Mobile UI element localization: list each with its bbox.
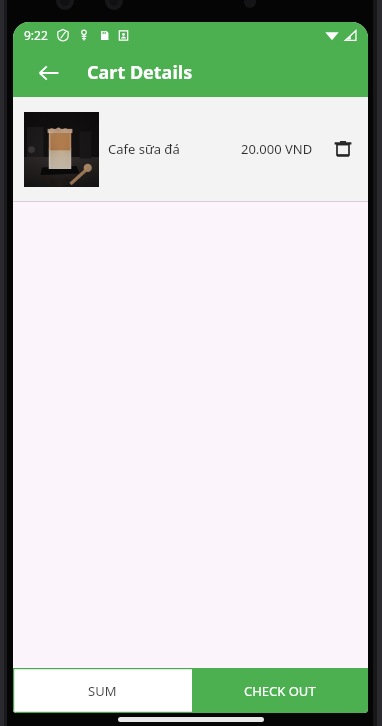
- staticText: CHECK OUT: [244, 682, 316, 700]
- staticText: Cafe sữa đá: [108, 140, 180, 158]
- button[interactable]: Cafe sữa đá: [13, 97, 368, 201]
- staticText: 9:22: [24, 27, 48, 43]
- staticText: 20.000 VND: [241, 140, 313, 158]
- staticText: SUM: [88, 682, 117, 700]
- button[interactable]: SUM: [13, 668, 192, 713]
- staticText: Cart Details: [87, 60, 193, 85]
- button[interactable]: CHECK OUT: [192, 668, 368, 713]
- button[interactable]: Delete item: [324, 130, 362, 168]
- button[interactable]: Back: [27, 51, 71, 95]
